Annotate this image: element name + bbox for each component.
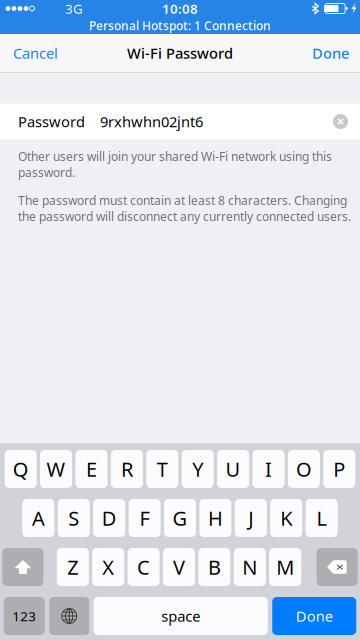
staticText: L bbox=[317, 505, 327, 531]
button[interactable]: M bbox=[269, 548, 301, 586]
staticText: K bbox=[280, 505, 292, 531]
staticText: C bbox=[137, 554, 150, 580]
button[interactable]: W bbox=[40, 450, 72, 488]
staticText: Other users will join your shared Wi-Fi … bbox=[18, 148, 332, 180]
staticText: F bbox=[140, 505, 150, 531]
button[interactable]: Next keyboard bbox=[49, 597, 89, 635]
button[interactable]: Delete bbox=[317, 548, 358, 586]
staticText: Z bbox=[67, 554, 78, 580]
button[interactable]: 123 bbox=[4, 597, 45, 635]
button[interactable]: E bbox=[75, 450, 107, 488]
button[interactable]: U bbox=[217, 450, 249, 488]
staticText: A bbox=[32, 505, 45, 531]
button[interactable]: Q bbox=[5, 450, 37, 488]
staticText: R bbox=[121, 456, 133, 482]
button[interactable]: D bbox=[93, 499, 125, 537]
button[interactable]: Shift bbox=[2, 548, 43, 586]
staticText: W bbox=[47, 456, 66, 482]
staticText: Done bbox=[296, 606, 333, 626]
button[interactable]: Y bbox=[182, 450, 214, 488]
button[interactable]: K bbox=[270, 499, 302, 537]
staticText: The password must contain at least 8 cha… bbox=[18, 192, 351, 224]
button[interactable]: Cancel bbox=[0, 34, 70, 72]
staticText: Done bbox=[312, 43, 349, 63]
staticText: S bbox=[68, 505, 79, 531]
button[interactable]: I bbox=[252, 450, 284, 488]
staticText: 3G bbox=[65, 0, 83, 17]
staticText: N bbox=[242, 554, 257, 580]
button[interactable]: A bbox=[22, 499, 54, 537]
staticText: 123 bbox=[12, 607, 36, 625]
staticText: G bbox=[172, 505, 187, 531]
button[interactable]: Done bbox=[272, 597, 356, 635]
button[interactable]: S bbox=[58, 499, 90, 537]
staticText: X bbox=[102, 554, 114, 580]
staticText: T bbox=[157, 456, 168, 482]
button[interactable]: space bbox=[94, 597, 268, 635]
staticText: Y bbox=[192, 456, 203, 482]
button[interactable]: L bbox=[306, 499, 338, 537]
staticText: M bbox=[276, 554, 294, 580]
staticText: U bbox=[226, 456, 241, 482]
button[interactable]: C bbox=[128, 548, 160, 586]
staticText: space bbox=[161, 606, 200, 626]
button[interactable]: R bbox=[111, 450, 143, 488]
button[interactable]: V bbox=[163, 548, 195, 586]
staticText: Password bbox=[18, 112, 85, 131]
button[interactable]: B bbox=[198, 548, 230, 586]
staticText: B bbox=[208, 554, 221, 580]
button[interactable]: X bbox=[92, 548, 124, 586]
staticText: O bbox=[296, 456, 312, 482]
staticText: Wi-Fi Password bbox=[127, 43, 233, 63]
staticText: Personal Hotspot: 1 Connection bbox=[89, 17, 271, 33]
staticText: D bbox=[102, 505, 117, 531]
button[interactable]: G bbox=[164, 499, 196, 537]
button[interactable]: O bbox=[288, 450, 320, 488]
button[interactable]: J bbox=[235, 499, 267, 537]
button[interactable]: H bbox=[199, 499, 231, 537]
staticText: J bbox=[248, 505, 253, 531]
staticText: 10:08 bbox=[162, 0, 198, 17]
button[interactable]: Clear text bbox=[333, 104, 360, 139]
button[interactable]: F bbox=[129, 499, 161, 537]
staticText: Q bbox=[13, 456, 29, 482]
button[interactable]: T bbox=[146, 450, 178, 488]
staticText: I bbox=[265, 456, 272, 482]
staticText: V bbox=[173, 554, 185, 580]
staticText: 9rxhwhn02jnt6 bbox=[100, 112, 203, 131]
staticText: H bbox=[208, 505, 223, 531]
button[interactable]: Done bbox=[300, 34, 360, 72]
staticText: Cancel bbox=[13, 43, 58, 63]
staticText: P bbox=[333, 456, 345, 482]
button[interactable]: P bbox=[323, 450, 355, 488]
button[interactable]: Z bbox=[57, 548, 89, 586]
staticText: E bbox=[86, 456, 97, 482]
button[interactable]: N bbox=[234, 548, 266, 586]
